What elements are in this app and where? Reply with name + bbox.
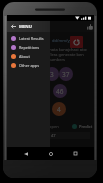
staticText: 3 [50,70,54,79]
button[interactable]: 37 [59,67,73,81]
button[interactable]: About [7,52,50,61]
button[interactable]: 4 [52,102,66,116]
staticText: open [49,124,59,129]
staticText: mata kunajchaci atcr. Pless generate ben… [48,47,94,62]
button[interactable]: 3 [45,67,59,81]
button[interactable]: Close menu [9,22,18,31]
staticText: Other apps [19,63,39,68]
button[interactable]: Generate numbers [70,36,83,48]
staticText: 4 [57,105,61,114]
button[interactable]: Recents [69,147,82,160]
staticText: dd/mm/yyyy [52,38,76,43]
staticText: 46 [56,87,64,96]
button[interactable]: 47 [49,132,90,139]
button[interactable]: Back [19,147,32,160]
staticText: Predict [79,124,93,129]
staticText: Repetitions [19,45,40,50]
button[interactable]: Rate this app [85,22,94,31]
staticText: 47 [51,133,56,138]
button[interactable]: Other apps [7,61,50,70]
button[interactable]: Home [44,147,57,160]
button[interactable]: Latest Results [7,34,50,43]
button[interactable]: Repetitions [7,43,50,52]
staticText: 37 [62,70,70,79]
staticText: MENU [19,24,32,30]
button[interactable]: 46 [53,84,67,98]
button[interactable]: Predict [71,122,94,131]
staticText: Latest Results [19,36,44,41]
staticText: About [19,54,30,59]
